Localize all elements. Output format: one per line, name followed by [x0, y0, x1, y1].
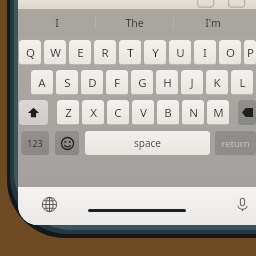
button[interactable]: W — [44, 40, 66, 65]
button[interactable]: D — [81, 70, 103, 95]
staticText: O — [226, 45, 235, 61]
staticText: I'm — [205, 16, 221, 30]
button[interactable]: C — [107, 100, 129, 125]
staticText: Z — [65, 105, 72, 121]
staticText: K — [213, 75, 221, 91]
staticText: N — [189, 105, 198, 121]
button[interactable]: L — [231, 70, 253, 95]
staticText: The — [125, 16, 144, 30]
button[interactable]: A — [31, 70, 53, 95]
staticText: Q — [26, 45, 35, 61]
button[interactable]: Z — [57, 100, 79, 125]
staticText: C — [114, 105, 122, 121]
button[interactable]: R — [94, 40, 116, 65]
button[interactable]: G — [131, 70, 153, 95]
button[interactable]: space — [85, 131, 210, 155]
staticText: 123 — [27, 137, 43, 149]
button[interactable]: N — [182, 100, 204, 125]
button[interactable]: M — [207, 100, 229, 125]
button[interactable]: Shift — [19, 100, 48, 125]
staticText: space — [134, 136, 161, 150]
button[interactable]: Delete — [238, 100, 256, 125]
button[interactable]: U — [169, 40, 191, 65]
button[interactable]: Q — [19, 40, 41, 65]
staticText: B — [164, 105, 172, 121]
button[interactable]: S — [56, 70, 78, 95]
staticText: U — [176, 45, 185, 61]
staticText: W — [50, 45, 61, 61]
button[interactable]: return — [215, 131, 256, 155]
button[interactable]: I'm — [174, 9, 251, 37]
staticText: return — [221, 137, 250, 150]
staticText: V — [140, 105, 147, 121]
button[interactable]: O — [219, 40, 241, 65]
button[interactable]: I — [18, 9, 95, 37]
button[interactable]: F — [106, 70, 128, 95]
button[interactable]: V — [132, 100, 154, 125]
staticText: X — [90, 105, 97, 121]
staticText: H — [163, 75, 172, 91]
staticText: T — [127, 45, 134, 61]
button[interactable]: E — [69, 40, 91, 65]
staticText: L — [239, 75, 246, 91]
staticText: F — [114, 75, 120, 91]
button[interactable]: I — [194, 40, 216, 65]
staticText: Y — [152, 45, 159, 61]
staticText: P — [247, 45, 254, 61]
staticText: A — [38, 75, 46, 91]
staticText: I — [203, 45, 207, 61]
staticText: I — [55, 16, 59, 30]
button[interactable]: T — [119, 40, 141, 65]
button[interactable]: Y — [144, 40, 166, 65]
staticText: J — [190, 75, 194, 91]
staticText: G — [138, 75, 147, 91]
button[interactable]: The — [96, 9, 173, 37]
staticText: D — [88, 75, 97, 91]
button[interactable]: Switch keyboard language — [38, 193, 60, 215]
button[interactable]: 123 — [21, 131, 49, 155]
button[interactable]: P — [244, 40, 256, 65]
button[interactable]: X — [82, 100, 104, 125]
button[interactable]: J — [181, 70, 203, 95]
button[interactable]: H — [156, 70, 178, 95]
staticText: R — [101, 45, 109, 61]
staticText: M — [213, 105, 224, 121]
button[interactable]: Emoji keyboard — [55, 131, 79, 155]
button[interactable]: K — [206, 70, 228, 95]
button[interactable]: B — [157, 100, 179, 125]
staticText: S — [64, 75, 71, 91]
button[interactable]: Dictation — [231, 193, 253, 215]
staticText: E — [77, 45, 84, 61]
